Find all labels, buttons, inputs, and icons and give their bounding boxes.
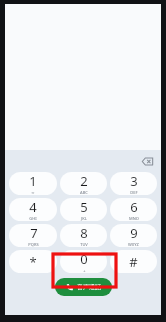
staticText: # (129, 253, 138, 271)
button[interactable]: 0 (60, 250, 107, 273)
staticText: 0 (80, 250, 88, 268)
staticText: 3 (130, 172, 138, 190)
staticText: 2 (80, 172, 88, 190)
staticText: 音声通話 (77, 283, 101, 291)
staticText: 6 (130, 198, 138, 216)
button[interactable]: 9 (110, 224, 157, 247)
staticText: WXYZ (128, 242, 139, 247)
staticText: TUV (80, 242, 88, 247)
staticText: 8 (80, 224, 88, 242)
button[interactable]: 2 (60, 172, 107, 195)
button[interactable]: # (110, 250, 157, 273)
staticText: ABC (80, 190, 88, 195)
staticText: 5 (80, 198, 88, 216)
staticText: 4 (29, 198, 37, 216)
button[interactable]: 音声通話 (55, 278, 112, 296)
staticText: 1 (29, 172, 37, 190)
button[interactable]: Backspace (139, 153, 155, 169)
button[interactable]: 7 (9, 224, 57, 247)
button[interactable]: 6 (110, 198, 157, 221)
staticText: MNO (129, 216, 139, 221)
staticText: 9 (130, 224, 138, 242)
button[interactable]: 1 (9, 172, 57, 195)
staticText: JKL (81, 216, 87, 221)
staticText: 7 (30, 224, 38, 242)
button[interactable]: 4 (9, 198, 57, 221)
button[interactable]: 5 (60, 198, 107, 221)
staticText: + (83, 268, 86, 273)
staticText: * (29, 253, 37, 271)
button[interactable]: 8 (60, 224, 107, 247)
staticText: GHI (29, 216, 37, 221)
staticText: DEF (130, 190, 138, 195)
staticText: ∞ (31, 190, 35, 195)
button[interactable]: 3 (110, 172, 157, 195)
staticText: PQRS (28, 242, 39, 247)
button[interactable]: * (9, 250, 57, 273)
